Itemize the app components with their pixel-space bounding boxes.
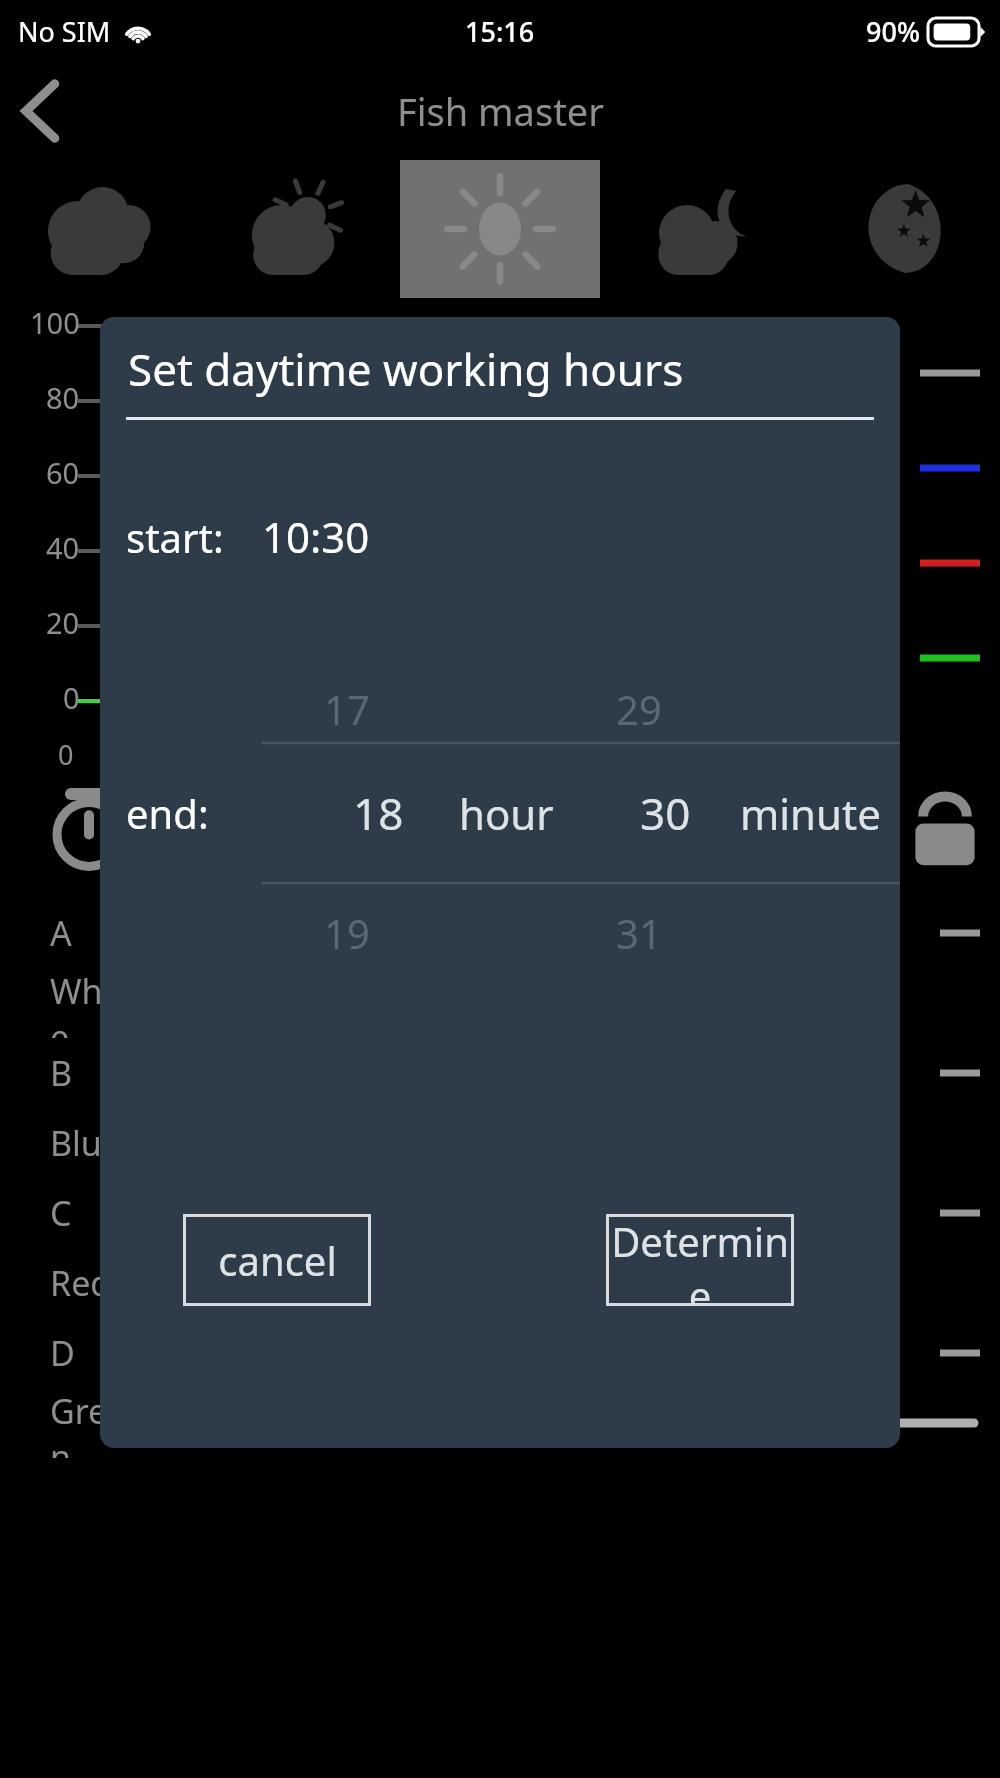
button[interactable]: Determine [606,1214,794,1306]
staticText: 20 [46,603,80,642]
button[interactable]: A [0,898,1000,968]
button[interactable]: Night [800,160,1000,298]
staticText: Blue [50,1120,122,1166]
button[interactable]: 18 [319,783,437,843]
staticText: 15:16 [465,13,535,50]
staticText: A [50,910,72,956]
staticText: Green [50,1388,130,1458]
button[interactable]: Back [0,69,84,153]
staticText: 10:30 [262,508,370,565]
staticText: 31 [616,906,662,960]
staticText: 90% [866,13,920,50]
button[interactable]: C [0,1178,1000,1248]
button[interactable]: Sunny [400,160,600,298]
staticText: Determine [606,1214,794,1306]
button[interactable]: D [0,1318,1000,1388]
button[interactable]: Blue [0,1108,1000,1178]
button[interactable]: 10:30 [262,508,370,565]
staticText: 18 [353,783,404,843]
button[interactable]: cancel [183,1214,371,1306]
staticText: 17 [324,682,370,736]
button[interactable]: Green [0,1388,1000,1458]
staticText: White [50,968,130,1038]
staticText: end: [126,786,209,840]
button[interactable]: Cloudy [0,160,200,298]
staticText: 60 [46,453,80,492]
button[interactable]: Night cloudy [600,160,800,298]
button[interactable]: B [0,1038,1000,1108]
staticText: 0 [58,736,74,773]
button[interactable]: 30 [606,783,724,843]
button[interactable]: Partly cloudy [200,160,400,298]
staticText: 30 [640,783,691,843]
staticText: cancel [218,1233,337,1287]
button[interactable]: White [0,968,1000,1038]
staticText: 19 [324,906,370,960]
staticText: D [50,1330,75,1376]
staticText: Red [50,1260,112,1306]
staticText: 40 [46,528,80,567]
button[interactable]: Red [0,1248,1000,1318]
staticText: No SIM [18,13,111,50]
staticText: 80 [46,378,80,417]
staticText: minute [740,785,881,842]
staticText: Fish master [397,85,604,137]
staticText: hour [459,785,554,842]
staticText: C [50,1190,72,1236]
staticText: 100 [30,303,80,342]
staticText: start: [126,510,224,564]
staticText: 0 [63,678,80,717]
staticText: 29 [616,682,662,736]
staticText: Set daytime working hours [128,339,684,399]
staticText: B [50,1050,73,1096]
